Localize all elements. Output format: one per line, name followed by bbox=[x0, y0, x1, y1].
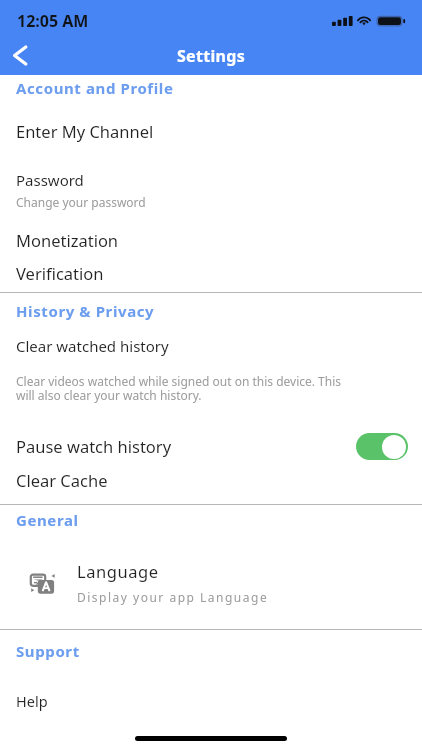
button[interactable] bbox=[0, 106, 422, 142]
staticText: Display your app Language bbox=[77, 589, 269, 605]
staticText: Language bbox=[77, 560, 159, 582]
button[interactable]: Pause watch history toggle bbox=[356, 433, 408, 460]
button[interactable] bbox=[0, 256, 422, 290]
staticText: History & Privacy bbox=[16, 301, 155, 321]
staticText: Support bbox=[16, 641, 80, 661]
staticText: Verification bbox=[16, 262, 104, 284]
button[interactable] bbox=[0, 330, 422, 362]
staticText: Help bbox=[16, 691, 48, 711]
button[interactable] bbox=[0, 688, 422, 718]
button[interactable] bbox=[0, 428, 422, 466]
staticText: General bbox=[16, 510, 79, 530]
staticText: Monetization bbox=[16, 229, 119, 251]
staticText: Clear watched history bbox=[16, 336, 169, 356]
button[interactable] bbox=[0, 160, 422, 210]
staticText: Clear Cache bbox=[16, 469, 108, 491]
button[interactable]: Back bbox=[0, 36, 40, 75]
staticText: Pause watch history bbox=[16, 435, 172, 457]
staticText: Clear videos watched while signed out on… bbox=[16, 373, 360, 404]
staticText: Settings bbox=[177, 45, 245, 67]
staticText: Password bbox=[16, 170, 84, 190]
button[interactable] bbox=[0, 466, 422, 498]
button[interactable] bbox=[0, 222, 422, 256]
staticText: Enter My Channel bbox=[16, 120, 154, 142]
staticText: Change your password bbox=[16, 194, 146, 210]
staticText: 12:05 AM bbox=[17, 10, 89, 32]
staticText: Account and Profile bbox=[16, 78, 174, 98]
button[interactable] bbox=[0, 556, 422, 612]
